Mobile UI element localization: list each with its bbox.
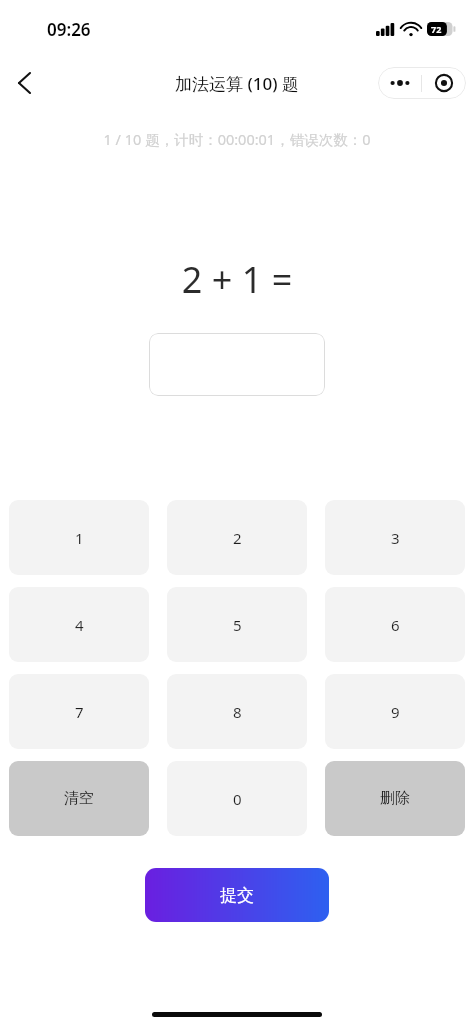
staticText: 09:26 <box>47 18 91 41</box>
staticText: 4 <box>75 615 84 635</box>
button[interactable]: 3 <box>325 500 465 575</box>
staticText: 7 <box>75 702 84 722</box>
staticText: 2 + 1 = <box>0 255 474 304</box>
staticText: 删除 <box>380 789 410 808</box>
button[interactable]: 7 <box>9 674 149 749</box>
button[interactable]: 0 <box>167 761 307 836</box>
button[interactable]: 2 <box>167 500 307 575</box>
staticText: 1 / 10 题，计时：00:00:01，错误次数：0 <box>0 129 474 149</box>
button[interactable]: 5 <box>167 587 307 662</box>
button[interactable]: More options <box>378 67 421 99</box>
button[interactable]: 6 <box>325 587 465 662</box>
button[interactable]: 1 <box>9 500 149 575</box>
staticText: 1 <box>75 528 84 548</box>
staticText: 0 <box>233 789 242 809</box>
button[interactable]: 删除 <box>325 761 465 836</box>
staticText: 72 <box>431 23 442 35</box>
button[interactable]: 4 <box>9 587 149 662</box>
button[interactable]: Close mini program <box>422 67 466 99</box>
button[interactable]: 提交 <box>145 868 329 922</box>
staticText: 提交 <box>220 885 254 906</box>
staticText: 8 <box>233 702 242 722</box>
staticText: 2 <box>233 528 242 548</box>
button[interactable]: 8 <box>167 674 307 749</box>
staticText: 3 <box>391 528 400 548</box>
button[interactable]: 9 <box>325 674 465 749</box>
button[interactable]: 清空 <box>9 761 149 836</box>
staticText: 6 <box>391 615 400 635</box>
button[interactable]: Answer input <box>149 333 325 396</box>
staticText: 5 <box>233 615 242 635</box>
staticText: 加法运算 (10) 题 <box>175 72 299 95</box>
button[interactable]: Back <box>0 59 48 107</box>
staticText: 清空 <box>64 789 94 808</box>
staticText: 9 <box>391 702 400 722</box>
